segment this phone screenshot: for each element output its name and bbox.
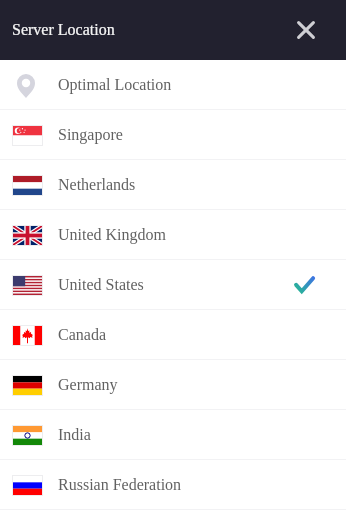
button[interactable]: United Kingdom (0, 210, 346, 259)
staticText: Optimal Location (58, 76, 172, 94)
staticText: Germany (58, 376, 118, 394)
button[interactable]: Netherlands (0, 160, 346, 209)
button[interactable]: Singapore (0, 110, 346, 159)
button[interactable]: Optimal Location (0, 60, 346, 109)
staticText: Singapore (58, 126, 123, 144)
button[interactable]: Germany (0, 360, 346, 409)
staticText: United Kingdom (58, 226, 166, 244)
staticText: Russian Federation (58, 476, 182, 494)
staticText: India (58, 426, 91, 444)
button[interactable]: India (0, 410, 346, 459)
staticText: Canada (58, 326, 106, 344)
staticText: Server Location (12, 21, 115, 39)
button[interactable]: Close (290, 14, 322, 46)
button[interactable]: Canada (0, 310, 346, 359)
staticText: United States (58, 276, 144, 294)
button[interactable]: United States (0, 260, 346, 309)
staticText: Netherlands (58, 176, 136, 194)
button[interactable]: Russian Federation (0, 460, 346, 509)
